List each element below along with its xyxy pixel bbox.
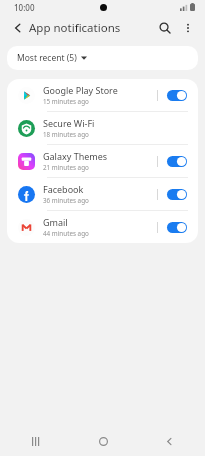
staticText: 21 minutes ago [43,163,89,172]
staticText: 44 minutes ago [43,229,89,238]
staticText: 18 minutes ago [43,130,89,139]
button[interactable]: Gmail [7,211,198,243]
staticText: 36 minutes ago [43,196,89,205]
staticText: Gmail [43,216,68,228]
button[interactable]: Toggle Google Play Store notifications [164,84,189,106]
staticText: App notifications [29,20,121,36]
button[interactable]: Home [89,427,117,455]
button[interactable]: Google Play Store [7,79,198,111]
button[interactable]: Toggle Gmail notifications [164,216,189,238]
button[interactable]: Toggle Galaxy Themes notifications [164,150,189,172]
button[interactable]: Facebook [7,178,198,210]
button[interactable]: Galaxy Themes [7,145,198,177]
staticText: 15 minutes ago [43,97,89,106]
button[interactable]: Most recent (5) [7,46,198,70]
staticText: Galaxy Themes [43,150,108,162]
button[interactable]: Secure Wi-Fi [7,112,198,144]
staticText: Most recent (5) [17,52,77,64]
button[interactable]: More options [177,17,199,39]
staticText: Facebook [43,183,84,195]
button[interactable]: Toggle Facebook notifications [164,183,189,205]
staticText: Google Play Store [43,84,118,96]
button[interactable]: Back [8,18,28,38]
button[interactable]: Recent apps [22,427,50,455]
button[interactable]: Search [153,16,177,40]
staticText: 10:00 [14,2,35,13]
staticText: Secure Wi-Fi [43,117,95,129]
button[interactable]: Back [155,427,183,455]
